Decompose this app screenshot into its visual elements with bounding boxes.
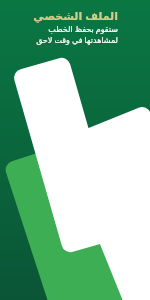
staticText: ستقوم بحفظ الخطب [48, 23, 118, 34]
staticText: الملف الشخصي [33, 8, 118, 23]
staticText: لمشاهدتها في وقت لاحق [36, 34, 118, 45]
